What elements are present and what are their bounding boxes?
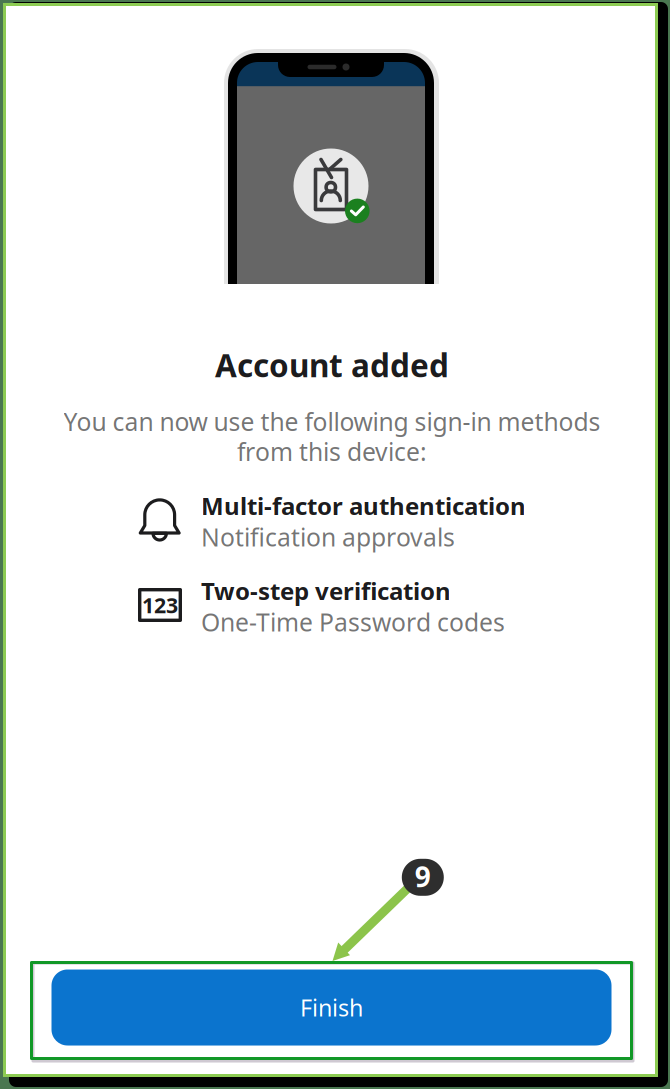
- staticText: Notification approvals: [201, 520, 455, 554]
- staticText: Two-step verification: [201, 574, 451, 607]
- button[interactable]: Finish: [51, 969, 611, 1045]
- staticText: You can now use the following sign-in me…: [63, 405, 600, 438]
- staticText: from this device:: [237, 435, 427, 468]
- staticText: Account added: [215, 344, 449, 386]
- staticText: 123: [142, 590, 178, 620]
- staticText: Finish: [300, 992, 363, 1023]
- staticText: 9: [415, 857, 431, 895]
- staticText: One-Time Password codes: [201, 605, 505, 639]
- staticText: Multi-factor authentication: [201, 489, 526, 522]
